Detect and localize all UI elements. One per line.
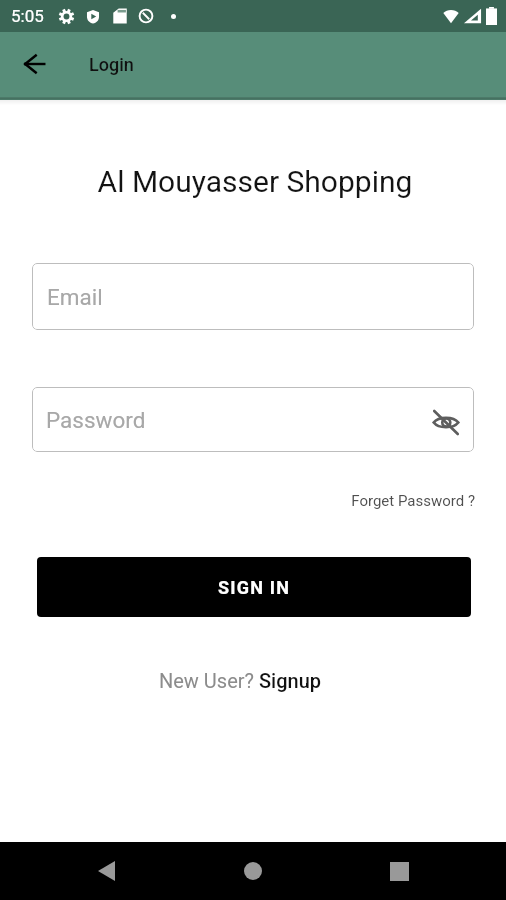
button[interactable]: Toggle password visibility <box>429 405 463 439</box>
staticText: Login <box>89 54 134 75</box>
staticText: Password <box>46 407 146 433</box>
button[interactable]: Forget Password ? <box>0 492 475 510</box>
staticText: Al Mouyasser Shopping <box>2 164 506 199</box>
button[interactable]: Back <box>14 44 54 84</box>
staticText: Email <box>47 284 103 310</box>
staticText: 5:05 <box>11 6 44 26</box>
button[interactable]: Password <box>32 387 474 452</box>
button[interactable]: Recent apps <box>375 847 423 895</box>
staticText: SIGN IN <box>218 577 291 598</box>
button[interactable]: Home <box>229 847 277 895</box>
button[interactable]: Email <box>32 263 474 330</box>
button[interactable]: New User? Signup <box>159 669 321 692</box>
button[interactable]: SIGN IN <box>37 557 471 617</box>
button[interactable]: Back <box>82 847 130 895</box>
